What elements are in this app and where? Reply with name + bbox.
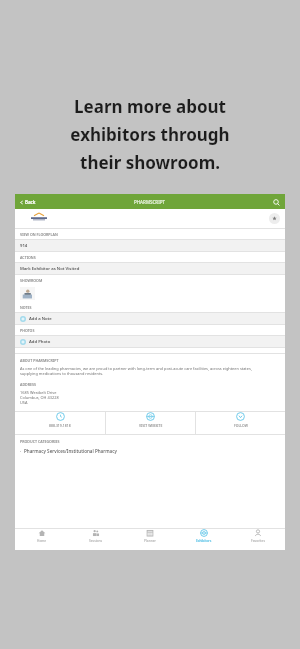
staticText: Pharmacy Services/Institutional Pharmacy: [24, 448, 117, 454]
staticText: Add Photo: [29, 339, 51, 345]
button[interactable]: Call: [15, 412, 105, 428]
button[interactable]: Showroom photo: [20, 287, 35, 300]
button[interactable]: Add a Note: [15, 313, 285, 324]
staticText: Columbus, OH 43228: [20, 395, 59, 400]
button[interactable]: Follow: [196, 412, 285, 428]
staticText: As one of the leading pharmacies, we are…: [20, 366, 252, 371]
button[interactable]: 914: [15, 240, 285, 251]
staticText: Home: [37, 539, 47, 543]
button[interactable]: Add Photo: [15, 336, 285, 347]
staticText: PHOTOS: [20, 328, 35, 333]
staticText: NOTES: [20, 305, 32, 310]
staticText: 914: [20, 243, 28, 249]
staticText: ACTIONS: [20, 255, 36, 260]
staticText: VIEW ON FLOORPLAN: [20, 232, 58, 237]
staticText: SHOWROOM: [20, 278, 43, 283]
button[interactable]: Search: [271, 197, 281, 207]
staticText: 888-319-1818: [49, 423, 71, 428]
button[interactable]: Visit website: [106, 412, 195, 428]
button[interactable]: Home: [15, 529, 69, 543]
button[interactable]: Back: [19, 199, 36, 205]
staticText: FOLLOW: [234, 423, 248, 428]
staticText: Back: [25, 199, 36, 205]
button[interactable]: Exhibitors: [177, 529, 231, 543]
staticText: their showroom.: [0, 151, 300, 174]
staticText: ADDRESS: [20, 382, 36, 387]
staticText: Mark Exhibitor as Not Visited: [20, 266, 80, 272]
button[interactable]: Mark Exhibitor as Not Visited: [15, 263, 285, 274]
staticText: USA: [20, 400, 28, 405]
button[interactable]: Favorites: [231, 529, 285, 543]
staticText: ·: [20, 448, 22, 455]
staticText: Learn more about: [0, 95, 300, 118]
staticText: 1685 Westbelt Drive: [20, 390, 57, 395]
button[interactable]: Sessions: [69, 529, 123, 543]
staticText: Exhibitors: [196, 539, 212, 543]
staticText: Favorites: [251, 539, 265, 543]
staticText: exhibitors through: [0, 123, 300, 146]
button[interactable]: Planner: [123, 529, 177, 543]
staticText: PRODUCT CATEGORIES: [20, 439, 60, 444]
staticText: Add a Note: [29, 316, 52, 322]
staticText: ABOUT PHARMSCRIPT: [20, 358, 59, 363]
staticText: supplying medications to thousand reside…: [20, 371, 104, 376]
staticText: Planner: [144, 539, 156, 543]
staticText: Sessions: [89, 539, 103, 543]
button[interactable]: Favorite: [269, 213, 280, 224]
staticText: VISIT WEBSITE: [139, 423, 163, 428]
staticText: PHARMSCRIPT: [134, 199, 166, 205]
